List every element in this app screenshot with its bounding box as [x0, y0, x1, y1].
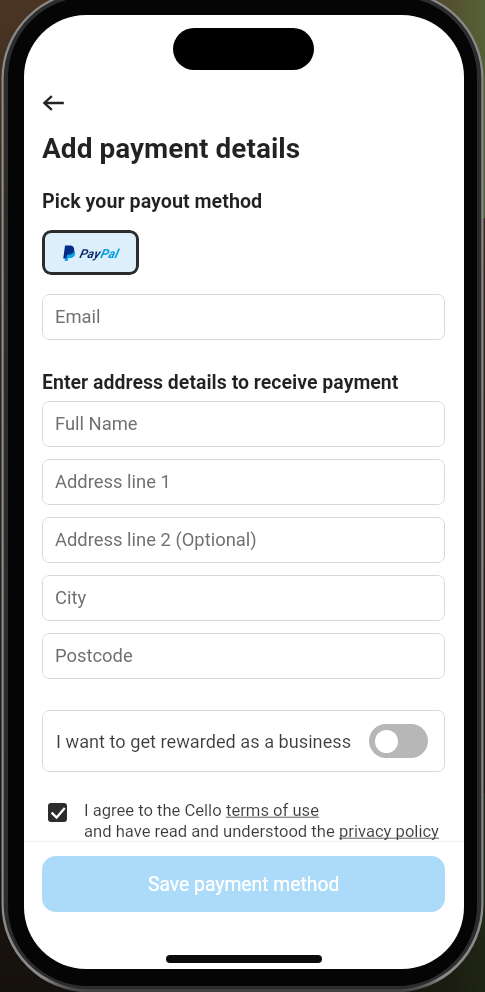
staticText: Pay: [79, 246, 100, 261]
button[interactable]: PayPal: [42, 230, 139, 275]
button[interactable]: Address line 2 (Optional): [42, 517, 445, 563]
staticText: Full Name: [55, 413, 138, 435]
staticText: I want to get rewarded as a business: [56, 731, 352, 752]
staticText: Address line 2 (Optional): [55, 529, 257, 551]
staticText: Postcode: [55, 645, 133, 667]
button[interactable]: I agree checkbox: [48, 803, 67, 822]
button[interactable]: terms of use: [226, 801, 319, 820]
button[interactable]: Full Name: [42, 401, 445, 447]
staticText: Pick your payout method: [42, 190, 263, 213]
staticText: City: [55, 587, 87, 609]
staticText: I agree to the Cello: [84, 801, 226, 820]
button[interactable]: Save payment method: [42, 856, 445, 912]
button[interactable]: Back: [31, 80, 77, 126]
staticText: Email: [55, 306, 101, 328]
staticText: Pal: [100, 246, 118, 261]
staticText: Enter address details to receive payment: [42, 371, 399, 394]
button[interactable]: City: [42, 575, 445, 621]
staticText: Add payment details: [42, 132, 301, 165]
staticText: and have read and understood the: [84, 822, 339, 841]
button[interactable]: privacy policy: [339, 822, 439, 841]
button[interactable]: Postcode: [42, 633, 445, 679]
staticText: Save payment method: [148, 873, 340, 896]
button[interactable]: Address line 1: [42, 459, 445, 505]
button[interactable]: Email: [42, 294, 445, 340]
staticText: Address line 1: [55, 471, 171, 493]
button[interactable]: I want to get rewarded as a business: [42, 710, 445, 772]
